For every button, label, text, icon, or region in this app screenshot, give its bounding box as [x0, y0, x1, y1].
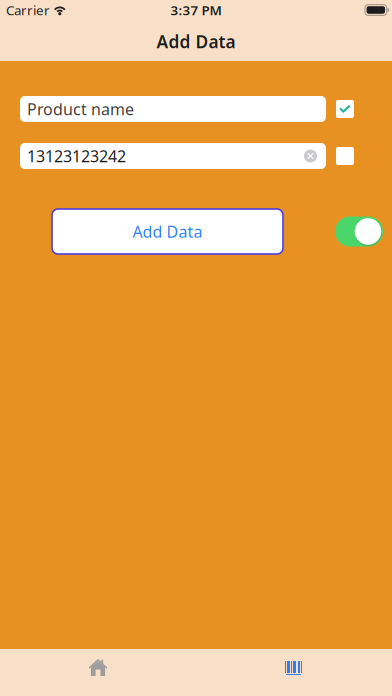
button[interactable]: Barcode not selected — [336, 147, 354, 165]
staticText: 13123123242 — [27, 145, 126, 167]
button[interactable]: Product name — [20, 96, 326, 122]
button[interactable]: Home — [0, 649, 196, 696]
staticText: Product name — [27, 98, 134, 120]
staticText: Add Data — [156, 30, 235, 53]
button[interactable]: 13123123242 — [20, 143, 326, 169]
button[interactable]: Add Data — [52, 209, 283, 254]
staticText: Carrier — [6, 1, 50, 19]
button[interactable]: Product name selected — [336, 100, 354, 118]
button[interactable]: Barcode — [196, 649, 392, 696]
staticText: 3:37 PM — [170, 1, 221, 19]
staticText: Add Data — [132, 221, 202, 242]
button[interactable]: Enabled — [335, 216, 383, 246]
